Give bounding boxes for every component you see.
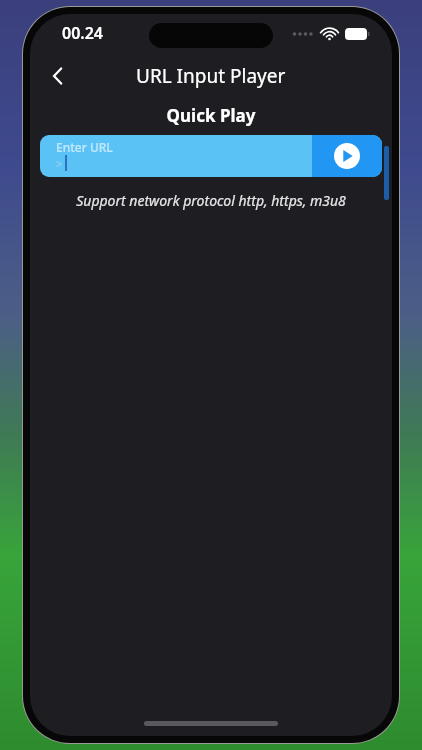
staticText: Enter URL	[56, 139, 113, 155]
staticText: >	[56, 156, 63, 171]
button[interactable]: Back	[38, 56, 78, 96]
staticText: Quick Play	[30, 104, 392, 127]
staticText: 00.24	[62, 22, 104, 44]
button[interactable]: Enter URL	[40, 135, 382, 177]
staticText: URL Input Player	[136, 63, 286, 89]
button[interactable]: Play	[312, 135, 382, 177]
staticText: Support network protocol http, https, m3…	[30, 191, 392, 210]
